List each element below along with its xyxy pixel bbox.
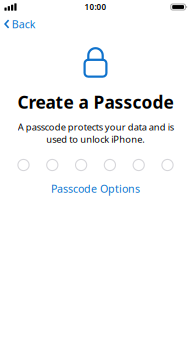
button[interactable]: Passcode Options — [43, 179, 148, 199]
staticText: Passcode Options — [51, 182, 140, 196]
staticText: Create a Passcode — [17, 91, 173, 114]
staticText: A passcode protects your data and is use… — [17, 121, 173, 145]
staticText: 10:00 — [84, 2, 106, 12]
button[interactable]: Back — [0, 13, 42, 35]
staticText: Back — [12, 17, 36, 31]
